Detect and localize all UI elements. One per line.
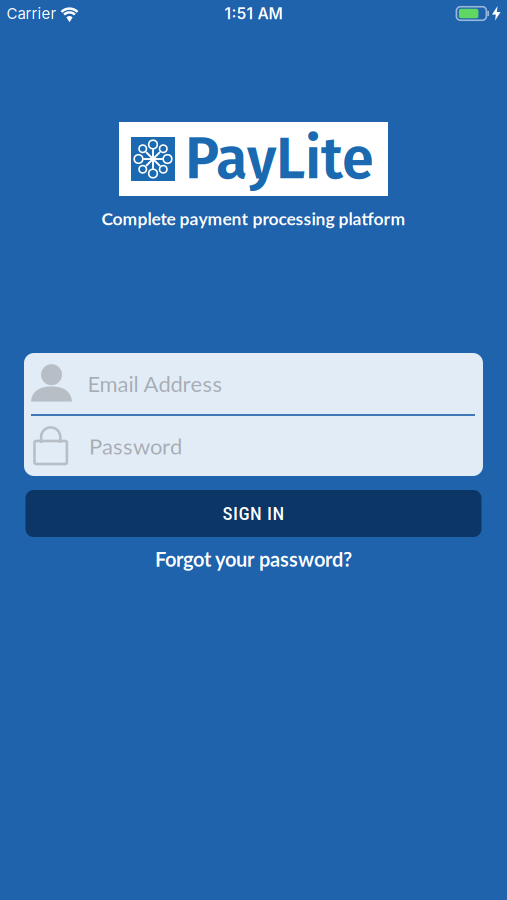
staticText: Carrier	[6, 4, 56, 22]
staticText: PayLite	[185, 124, 374, 193]
button[interactable]: Password	[24, 416, 483, 476]
button[interactable]: Email Address	[24, 353, 483, 414]
staticText: SIGN IN	[222, 502, 284, 525]
staticText: Password	[89, 433, 182, 459]
staticText: Complete payment processing platform	[101, 208, 405, 229]
staticText: 1:51 AM	[224, 4, 282, 23]
staticText: Forgot your password?	[155, 547, 352, 571]
button[interactable]: SIGN IN	[25, 490, 481, 537]
button[interactable]: Forgot your password?	[155, 547, 352, 571]
staticText: Email Address	[87, 370, 222, 397]
